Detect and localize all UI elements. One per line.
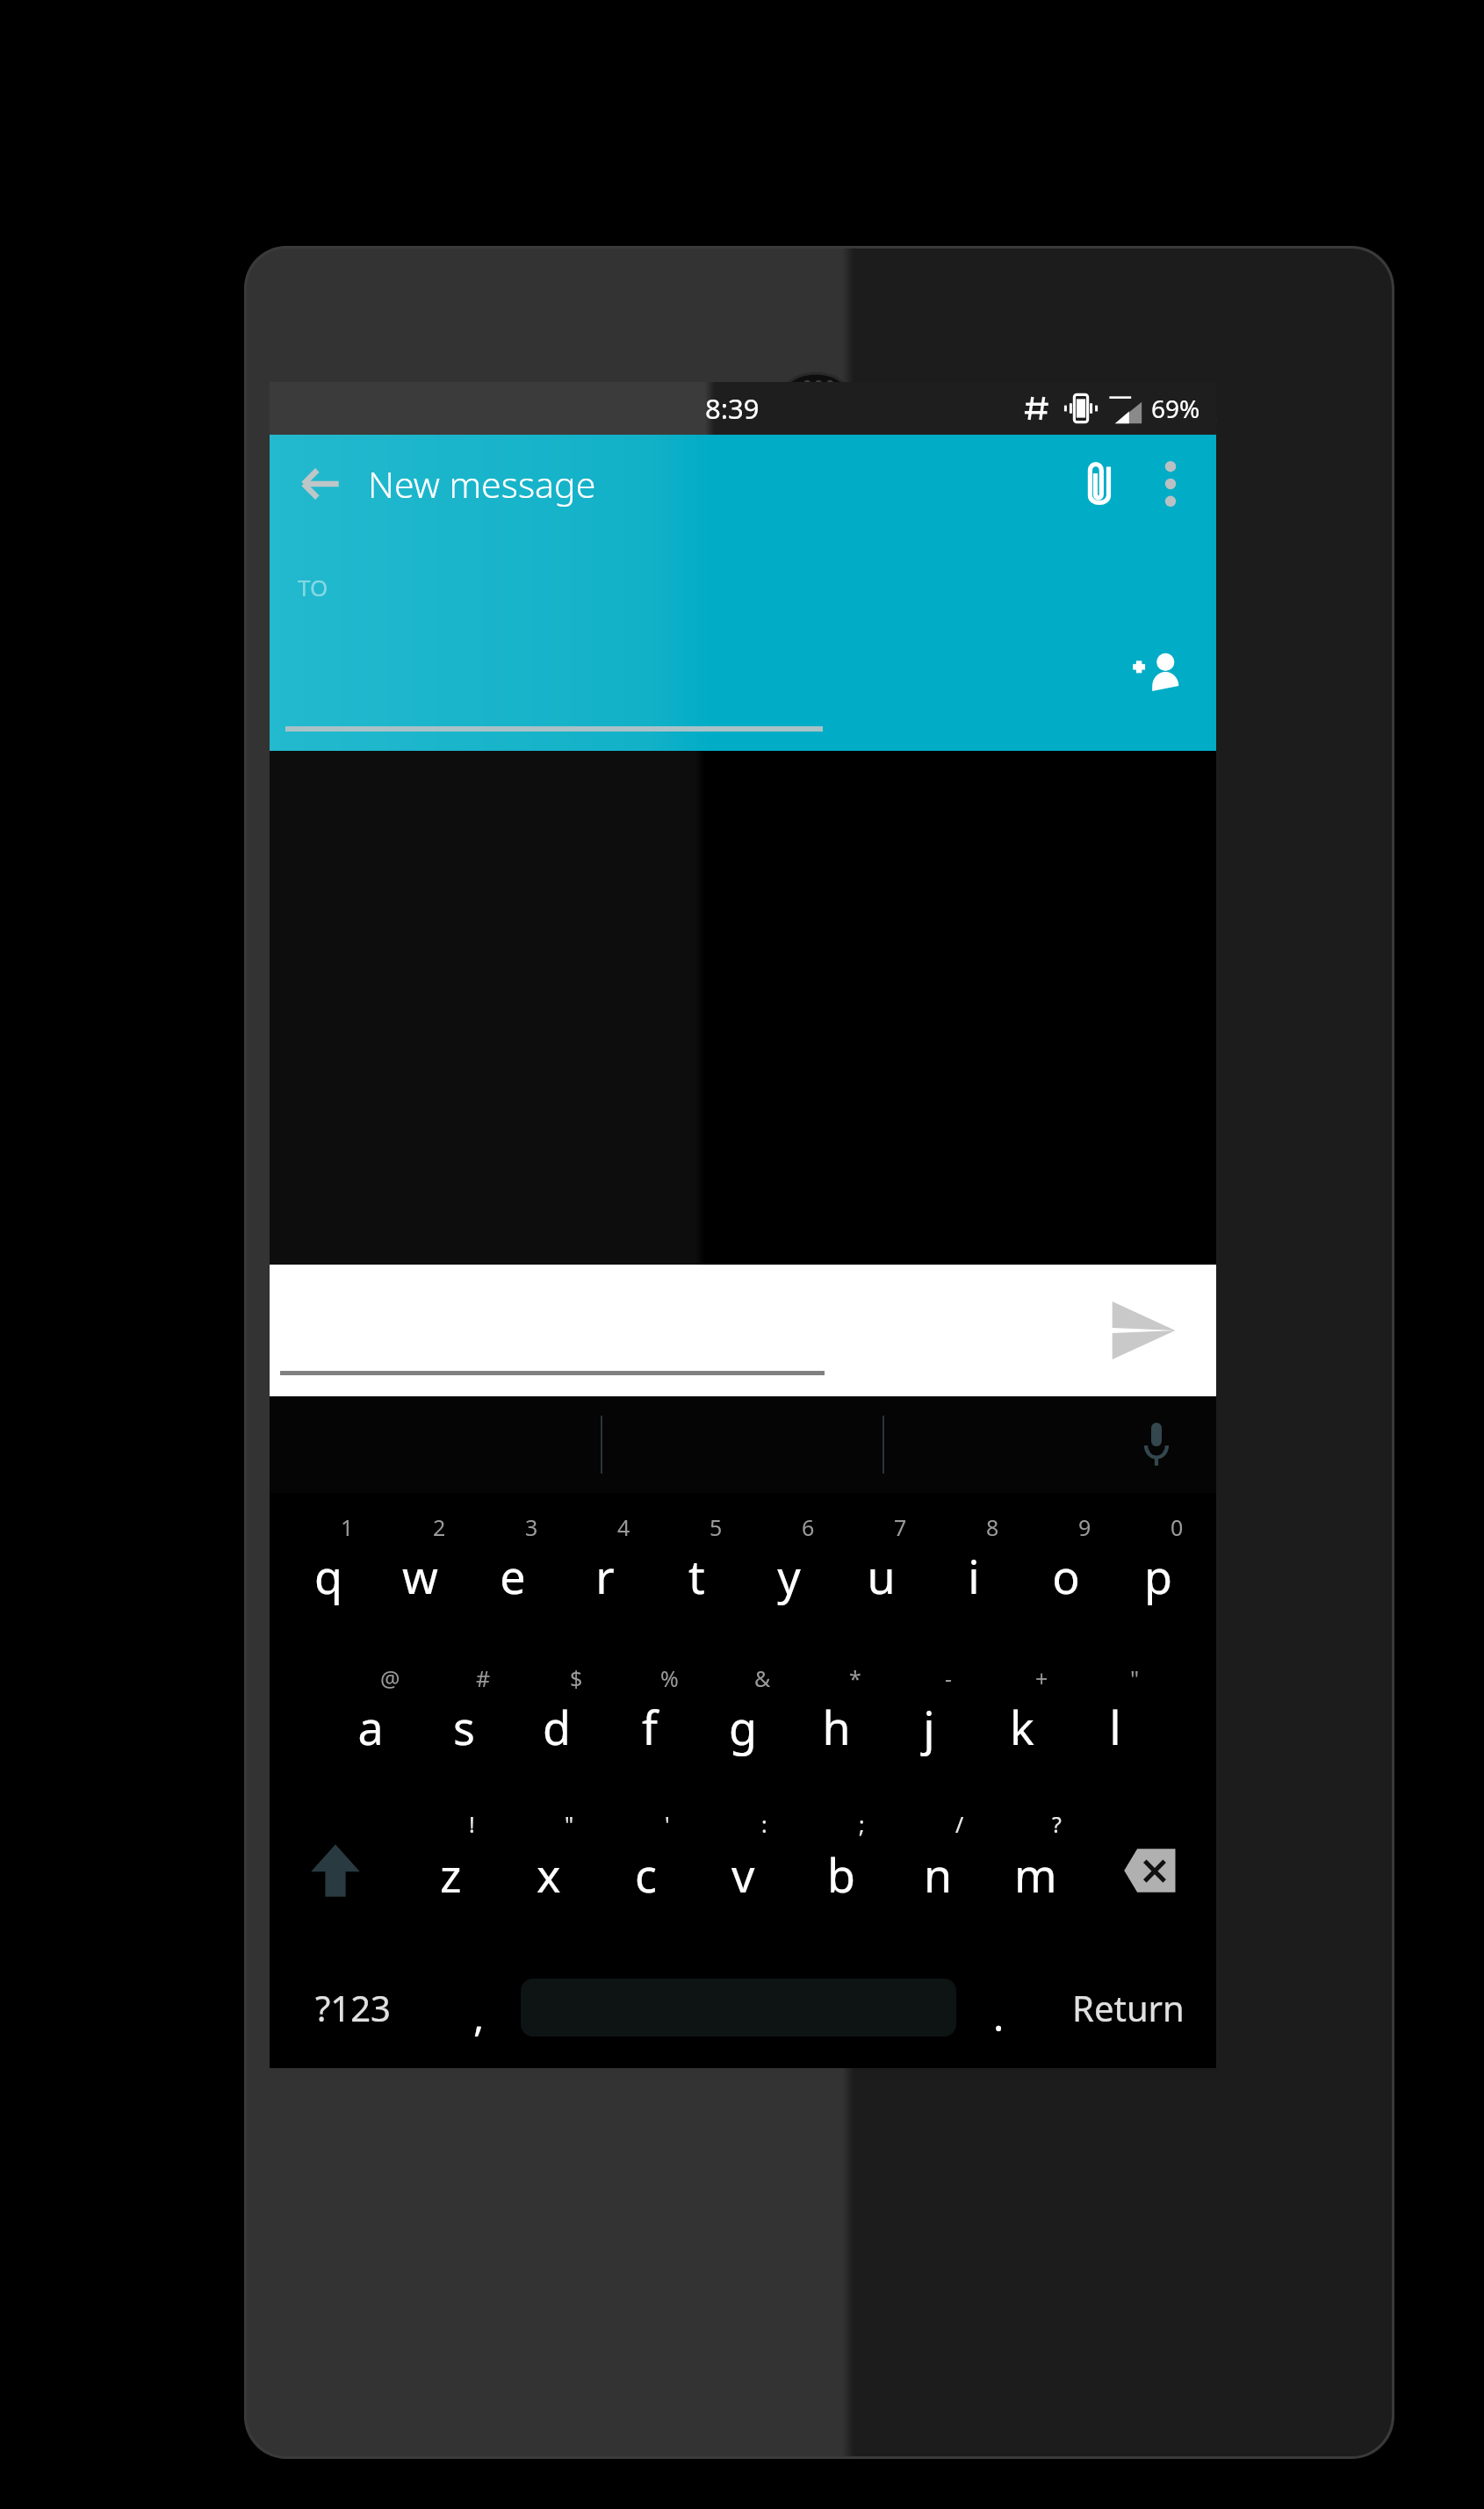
button[interactable]: +	[976, 1644, 1069, 1795]
button[interactable]: 9	[1019, 1493, 1112, 1644]
staticText: a	[357, 1696, 384, 1758]
staticText: 1	[341, 1512, 354, 1542]
staticText: z	[440, 1843, 462, 1906]
button[interactable]: ;	[792, 1795, 890, 1946]
staticText: &	[754, 1663, 771, 1693]
staticText: ,	[473, 1988, 485, 2044]
staticText: t	[688, 1545, 705, 1607]
button[interactable]: %	[603, 1644, 696, 1795]
button[interactable]: 4	[558, 1493, 651, 1644]
staticText: c	[635, 1843, 657, 1906]
staticText: n	[924, 1843, 953, 1906]
button[interactable]: Attach	[1065, 447, 1139, 521]
staticText: "	[1130, 1663, 1140, 1693]
button[interactable]: "	[1069, 1644, 1162, 1795]
staticText: 2	[433, 1512, 446, 1542]
staticText: ;	[859, 1809, 865, 1839]
staticText: e	[500, 1545, 526, 1607]
staticText: 8:39	[705, 390, 760, 427]
button[interactable]: #	[417, 1644, 510, 1795]
staticText: y	[777, 1545, 801, 1607]
staticText: i	[968, 1545, 980, 1607]
button[interactable]: ,	[436, 1946, 521, 2068]
button[interactable]: .	[956, 1946, 1041, 2068]
staticText: v	[731, 1843, 755, 1906]
button[interactable]: 2	[374, 1493, 466, 1644]
button[interactable]: 7	[835, 1493, 927, 1644]
button[interactable]: ?123	[270, 1946, 436, 2068]
button[interactable]: Add recipient	[1123, 637, 1192, 705]
button[interactable]: 8	[927, 1493, 1019, 1644]
button[interactable]: 6	[743, 1493, 835, 1644]
button[interactable]: More options	[1139, 452, 1202, 515]
button[interactable]: :	[695, 1795, 792, 1946]
staticText: 0	[1171, 1512, 1184, 1542]
staticText: *	[849, 1663, 861, 1693]
button[interactable]: /	[890, 1795, 987, 1946]
staticText: h	[822, 1696, 851, 1758]
button[interactable]: 0	[1112, 1493, 1204, 1644]
button[interactable]: ?	[987, 1795, 1084, 1946]
button[interactable]: 3	[466, 1493, 558, 1644]
staticText: ?	[1052, 1809, 1062, 1839]
staticText: 4	[617, 1512, 630, 1542]
staticText: s	[453, 1696, 475, 1758]
staticText: "	[565, 1809, 574, 1839]
staticText: p	[1144, 1545, 1172, 1607]
button[interactable]: '	[597, 1795, 695, 1946]
staticText: 5	[710, 1512, 723, 1542]
button[interactable]: Back	[289, 452, 352, 515]
staticText: o	[1052, 1545, 1080, 1607]
staticText: g	[729, 1696, 757, 1758]
staticText: @	[380, 1663, 400, 1693]
button[interactable]: Shift	[270, 1795, 401, 1946]
staticText: +	[1035, 1663, 1048, 1693]
staticText: x	[537, 1843, 561, 1906]
button[interactable]: Send	[1095, 1283, 1190, 1378]
staticText: /	[955, 1809, 964, 1839]
staticText: w	[402, 1545, 438, 1607]
staticText: 3	[525, 1512, 538, 1542]
staticText: Return	[1072, 1984, 1185, 2031]
staticText: $	[570, 1663, 583, 1693]
staticText: 6	[802, 1512, 815, 1542]
button[interactable]: 5	[651, 1493, 743, 1644]
staticText: m	[1014, 1843, 1057, 1906]
button[interactable]: Return	[1041, 1946, 1216, 2068]
button[interactable]: Voice input	[1123, 1411, 1190, 1478]
staticText: %	[660, 1663, 679, 1693]
button[interactable]: *	[789, 1644, 882, 1795]
staticText: .	[993, 1988, 1005, 2044]
staticText: New message	[368, 459, 596, 508]
button[interactable]: @	[324, 1644, 417, 1795]
staticText: 7	[894, 1512, 907, 1542]
button[interactable]: "	[500, 1795, 597, 1946]
staticText: #	[476, 1663, 491, 1693]
staticText: b	[827, 1843, 855, 1906]
staticText: l	[1109, 1696, 1121, 1758]
button[interactable]: $	[510, 1644, 603, 1795]
button[interactable]: 1	[282, 1493, 374, 1644]
staticText: r	[595, 1545, 615, 1607]
button[interactable]: !	[401, 1795, 500, 1946]
button[interactable]: Send	[270, 1265, 1216, 1396]
staticText: k	[1010, 1696, 1034, 1758]
staticText: TO	[298, 572, 328, 602]
staticText: 9	[1078, 1512, 1091, 1542]
staticText: '	[665, 1809, 670, 1839]
staticText: j	[923, 1696, 935, 1758]
button[interactable]: Backspace	[1084, 1795, 1216, 1946]
button[interactable]: -	[882, 1644, 976, 1795]
staticText: q	[314, 1545, 342, 1607]
button[interactable]: &	[696, 1644, 789, 1795]
staticText: 8	[986, 1512, 999, 1542]
staticText: -	[945, 1663, 953, 1693]
staticText: :	[761, 1809, 767, 1839]
staticText: ?123	[315, 1984, 391, 2031]
staticText: f	[642, 1696, 658, 1758]
staticText: !	[469, 1809, 475, 1839]
staticText: 69%	[1151, 392, 1200, 425]
staticText: d	[543, 1696, 571, 1758]
staticText: u	[867, 1545, 896, 1607]
